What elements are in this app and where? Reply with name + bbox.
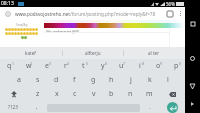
- staticText: alfterju: [85, 50, 101, 56]
- button[interactable]: p: [167, 59, 186, 73]
- button[interactable]: w: [19, 59, 38, 73]
- staticText: b: [109, 89, 114, 99]
- button[interactable]: Recent apps: [185, 18, 200, 29]
- button[interactable]: f: [65, 73, 84, 87]
- staticText: g: [91, 75, 96, 85]
- staticText: 6: [105, 61, 108, 66]
- staticText: o: [156, 61, 161, 71]
- button[interactable]: Back: [185, 81, 200, 92]
- staticText: f: [73, 75, 76, 85]
- button[interactable]: n: [121, 87, 140, 101]
- button[interactable]: Site information: [0, 7, 15, 20]
- staticText: 9: [160, 61, 163, 66]
- button[interactable]: [20, 32, 23, 35]
- staticText: x: [55, 89, 59, 99]
- button[interactable]: r: [56, 59, 75, 73]
- button[interactable]: [29, 32, 32, 35]
- staticText: ?123: [8, 104, 18, 110]
- staticText: d: [54, 75, 59, 85]
- button[interactable]: [32, 28, 35, 31]
- button[interactable]: [5, 32, 8, 35]
- button[interactable]: ,: [28, 101, 46, 113]
- button[interactable]: Tabs: [164, 7, 175, 20]
- staticText: al ter: [148, 50, 160, 56]
- button[interactable]: [23, 28, 26, 31]
- button[interactable]: l: [158, 73, 177, 87]
- button[interactable]: v: [84, 87, 103, 101]
- button[interactable]: [26, 32, 29, 35]
- button[interactable]: z: [28, 87, 47, 101]
- button[interactable]: j: [121, 73, 140, 87]
- button[interactable]: al ter: [123, 47, 185, 59]
- button[interactable]: [24, 36, 27, 39]
- staticText: 3: [49, 61, 52, 66]
- button[interactable]: k: [140, 73, 159, 87]
- button[interactable]: [32, 32, 35, 35]
- button[interactable]: t: [74, 59, 93, 73]
- staticText: 1: [12, 61, 15, 66]
- button[interactable]: [23, 32, 26, 35]
- button[interactable]: [14, 32, 17, 35]
- staticText: p: [174, 61, 179, 71]
- staticText: Smajlíky: [16, 23, 28, 27]
- button[interactable]: [17, 28, 20, 31]
- button[interactable]: [29, 28, 32, 31]
- button[interactable]: b: [102, 87, 121, 101]
- button[interactable]: [11, 32, 14, 35]
- staticText: z: [36, 89, 40, 99]
- button[interactable]: [11, 28, 14, 31]
- button[interactable]: [35, 28, 38, 31]
- button[interactable]: Enter: [160, 101, 185, 113]
- staticText: 4: [67, 61, 70, 66]
- staticText: /forum/posting.php?mode=reply&f=78: [70, 11, 156, 17]
- staticText: www.podsvojostreho.net: [15, 11, 70, 17]
- button[interactable]: [35, 32, 38, 35]
- button[interactable]: m: [140, 87, 159, 101]
- button[interactable]: x: [47, 87, 66, 101]
- button[interactable]: [20, 28, 23, 31]
- staticText: 08:13: [1, 0, 14, 7]
- button[interactable]: .: [142, 101, 158, 113]
- staticText: a: [17, 75, 21, 85]
- staticText: l: [167, 75, 169, 85]
- staticText: 2: [30, 61, 33, 66]
- staticText: e: [45, 61, 49, 71]
- button[interactable]: Home: [185, 53, 200, 64]
- button[interactable]: [8, 28, 11, 31]
- staticText: i: [139, 61, 141, 71]
- button[interactable]: e: [37, 59, 56, 73]
- button[interactable]: o: [149, 59, 168, 73]
- button[interactable]: i: [130, 59, 149, 73]
- button[interactable]: alfterju: [62, 47, 124, 59]
- button[interactable]: y: [93, 59, 112, 73]
- button[interactable]: [8, 32, 11, 35]
- button[interactable]: u: [112, 59, 131, 73]
- button[interactable]: g: [84, 73, 103, 87]
- button[interactable]: ?123: [0, 101, 26, 113]
- button[interactable]: [14, 28, 17, 31]
- button[interactable]: Backspace: [158, 87, 186, 101]
- staticText: 5: [86, 61, 89, 66]
- staticText: 0: [179, 61, 182, 66]
- button[interactable]: Hide keyboard: [185, 99, 200, 108]
- button[interactable]: d: [47, 73, 66, 87]
- button[interactable]: s: [28, 73, 47, 87]
- button[interactable]: c: [65, 87, 84, 101]
- button[interactable]: Shift: [0, 87, 28, 101]
- button[interactable]: kateř: [0, 47, 62, 59]
- button[interactable]: More options: [175, 7, 185, 20]
- staticText: t: [82, 61, 85, 71]
- button[interactable]: [5, 28, 8, 31]
- staticText: kateř: [25, 50, 37, 56]
- button[interactable]: a: [9, 73, 28, 87]
- staticText: 56%: [166, 1, 175, 7]
- staticText: s: [36, 75, 40, 85]
- button[interactable]: q: [0, 59, 19, 73]
- button[interactable]: [17, 32, 20, 35]
- staticText: 7: [123, 61, 126, 66]
- button[interactable]: [26, 28, 29, 31]
- staticText: ,: [36, 103, 38, 111]
- button[interactable]: h: [102, 73, 121, 87]
- button[interactable]: [21, 36, 24, 39]
